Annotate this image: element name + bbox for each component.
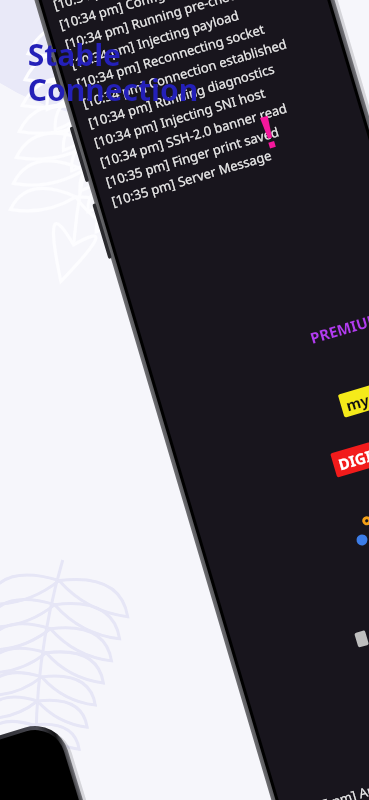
button[interactable]: Stable Connection promotional screen bbox=[0, 0, 369, 800]
